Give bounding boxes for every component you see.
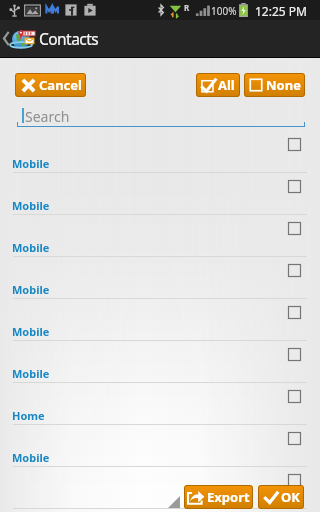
staticText: 100% xyxy=(211,4,237,18)
staticText: All xyxy=(218,76,235,94)
button[interactable]: Mobile xyxy=(0,257,320,299)
staticText: Mobile xyxy=(12,366,50,381)
staticText: Mobile xyxy=(12,282,50,297)
button[interactable]: Mobile xyxy=(0,341,320,383)
button[interactable]: Mobile xyxy=(0,173,320,215)
staticText: Mobile xyxy=(12,198,50,213)
staticText: Mobile xyxy=(12,156,50,171)
staticText: Mobile xyxy=(12,324,50,339)
button[interactable]: Mobile xyxy=(0,425,320,467)
staticText: Search xyxy=(25,107,70,126)
staticText: 12:25 PM xyxy=(255,3,307,19)
staticText: Contacts xyxy=(39,28,99,49)
button[interactable]: Mobile xyxy=(0,299,320,341)
button[interactable] xyxy=(0,467,320,509)
button[interactable]: Export xyxy=(184,485,253,509)
button[interactable]: None xyxy=(244,73,305,97)
button[interactable]: Mobile xyxy=(0,215,320,257)
staticText: None xyxy=(266,76,301,94)
button[interactable]: Home xyxy=(0,383,320,425)
button[interactable]: Search xyxy=(17,107,305,127)
staticText: Mobile xyxy=(12,450,50,465)
button[interactable]: OK xyxy=(258,485,304,509)
button[interactable]: Back xyxy=(0,20,11,57)
staticText: Mobile xyxy=(12,240,50,255)
staticText: Cancel xyxy=(39,76,82,94)
button[interactable]: Mobile xyxy=(0,131,320,173)
staticText: Export xyxy=(207,488,250,506)
staticText: OK xyxy=(281,488,300,506)
staticText: Home xyxy=(12,408,45,423)
button[interactable]: Cancel xyxy=(15,73,86,97)
staticText: R xyxy=(184,2,190,13)
button[interactable]: All xyxy=(196,73,240,97)
